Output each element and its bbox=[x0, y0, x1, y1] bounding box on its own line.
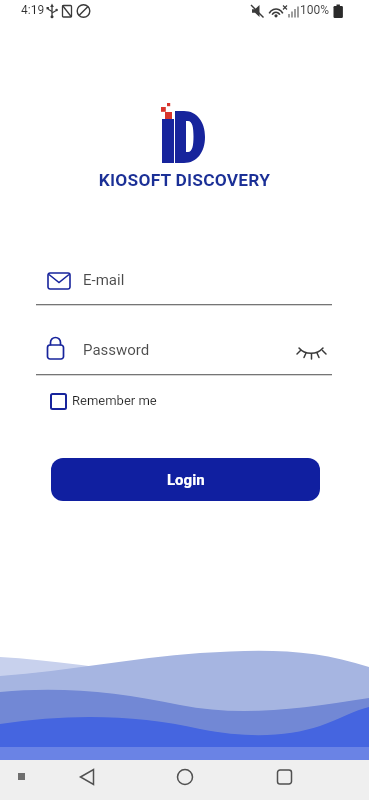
button[interactable]: E-mail bbox=[36, 262, 332, 306]
button[interactable]: Password bbox=[36, 332, 332, 376]
staticText: 100% bbox=[300, 3, 330, 17]
button[interactable] bbox=[165, 765, 205, 795]
staticText: Remember me bbox=[72, 393, 157, 408]
staticText: KIOSOFT DISCOVERY bbox=[0, 170, 369, 190]
staticText: E-mail bbox=[83, 271, 125, 289]
button[interactable]: Login bbox=[51, 458, 320, 501]
staticText: Login bbox=[167, 471, 205, 489]
button[interactable] bbox=[264, 765, 304, 795]
staticText: 4:19 bbox=[21, 3, 45, 17]
staticText: Password bbox=[83, 341, 150, 359]
button[interactable]: Remember me bbox=[50, 392, 180, 412]
button[interactable] bbox=[70, 765, 110, 795]
